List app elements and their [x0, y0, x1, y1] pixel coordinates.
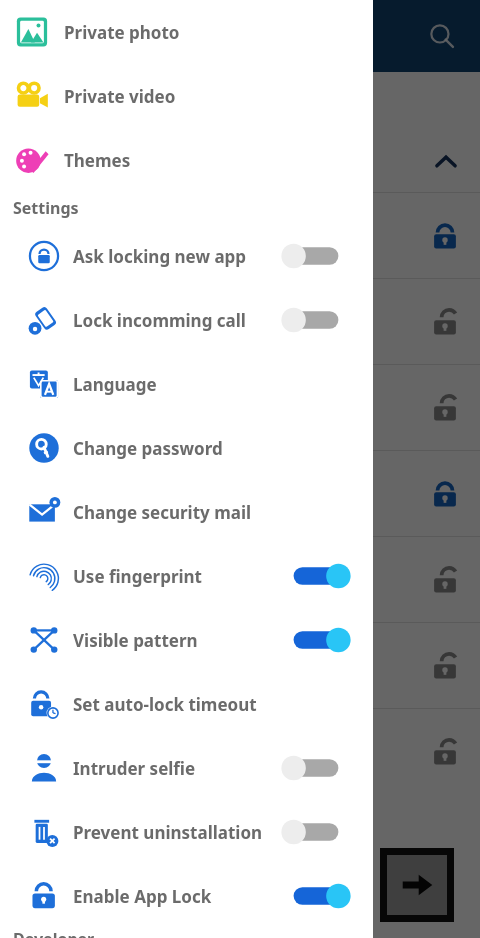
button[interactable]: Lock incomming call: [0, 288, 373, 352]
button[interactable]: Change security mail: [0, 480, 373, 544]
staticText: Prevent uninstallation: [73, 821, 263, 844]
staticText: Private video: [64, 85, 176, 108]
staticText: Visible pattern: [73, 629, 198, 652]
button[interactable]: Intruder selfie: [288, 751, 344, 785]
button[interactable]: [0, 132, 480, 192]
staticText: Developer: [13, 928, 95, 938]
staticText: Enable App Lock: [73, 885, 212, 908]
staticText: Lock incomming call: [73, 309, 246, 332]
staticText: Settings: [13, 197, 79, 219]
button[interactable]: Private photo: [0, 0, 373, 64]
button[interactable]: Use fingerprint: [288, 559, 344, 593]
staticText: Ask locking new app: [73, 245, 247, 268]
button[interactable]: Private video: [0, 64, 373, 128]
button[interactable]: Next: [387, 855, 447, 915]
staticText: Language: [73, 373, 157, 396]
button[interactable]: Intruder selfie: [0, 736, 373, 800]
button[interactable]: [0, 537, 480, 622]
button[interactable]: Visible pattern: [288, 623, 344, 657]
staticText: Use fingerprint: [73, 565, 202, 588]
staticText: Change password: [73, 437, 223, 460]
button[interactable]: [0, 365, 480, 450]
button[interactable]: Use fingerprint: [0, 544, 373, 608]
staticText: Intruder selfie: [73, 757, 196, 780]
staticText: Private photo: [64, 21, 180, 44]
button[interactable]: [0, 279, 480, 364]
button[interactable]: [0, 451, 480, 536]
button[interactable]: Enable App Lock: [0, 864, 373, 928]
button[interactable]: Prevent uninstallation: [288, 815, 344, 849]
button[interactable]: Lock incomming call: [288, 303, 344, 337]
button[interactable]: [0, 193, 480, 278]
staticText: Change security mail: [73, 501, 252, 524]
button[interactable]: Visible pattern: [0, 608, 373, 672]
button[interactable]: Prevent uninstallation: [0, 800, 373, 864]
button[interactable]: Language: [0, 352, 373, 416]
button[interactable]: Ask locking new app: [288, 239, 344, 273]
button[interactable]: Set auto-lock timeout: [0, 672, 373, 736]
button[interactable]: Change password: [0, 416, 373, 480]
button[interactable]: [0, 623, 480, 708]
button[interactable]: Themes: [0, 128, 373, 192]
button[interactable]: Ask locking new app: [0, 224, 373, 288]
staticText: Themes: [64, 149, 131, 172]
button[interactable]: Search: [420, 14, 464, 58]
staticText: GALLERY VAUL: [16, 91, 133, 114]
button[interactable]: [0, 709, 480, 794]
button[interactable]: Enable App Lock: [288, 879, 344, 913]
staticText: Set auto-lock timeout: [73, 693, 257, 716]
